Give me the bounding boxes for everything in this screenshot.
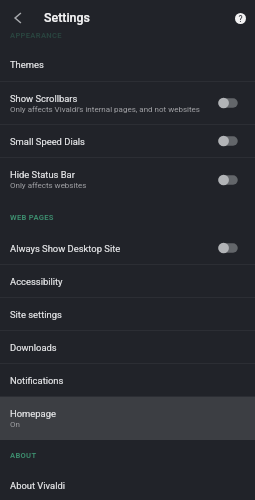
button[interactable]: Notifications [0, 364, 255, 396]
staticText: Settings [44, 10, 90, 25]
staticText: Downloads [10, 342, 57, 353]
staticText: ABOUT [10, 451, 37, 460]
staticText: Small Speed Dials [10, 136, 85, 147]
staticText: About Vivaldi [10, 480, 66, 491]
button[interactable]: Homepage [0, 397, 255, 440]
button[interactable]: About Vivaldi [0, 471, 255, 500]
staticText: APPEARANCE [10, 31, 62, 40]
staticText: Themes [10, 59, 44, 70]
staticText: Always Show Desktop Site [10, 243, 121, 254]
staticText: Hide Status Bar [10, 169, 75, 180]
staticText: Only affects Vivaldi's internal pages, a… [10, 105, 200, 114]
button[interactable]: Back [0, 0, 35, 35]
staticText: Accessibility [10, 276, 63, 287]
staticText: Only affects websites [10, 181, 87, 190]
staticText: Homepage [10, 408, 56, 419]
button[interactable]: Themes [0, 48, 255, 81]
button[interactable]: Downloads [0, 331, 255, 363]
button[interactable]: Small Speed Dials [0, 125, 255, 157]
staticText: Notifications [10, 375, 64, 386]
button[interactable]: Site settings [0, 298, 255, 330]
button[interactable]: Help [225, 3, 255, 33]
button[interactable]: Hide Status Bar [0, 158, 255, 201]
button[interactable]: Show Scrollbars [0, 82, 255, 124]
staticText: ? [238, 14, 243, 24]
staticText: Show Scrollbars [10, 93, 78, 104]
staticText: Site settings [10, 309, 62, 320]
staticText: WEB PAGES [10, 213, 54, 222]
button[interactable]: Accessibility [0, 265, 255, 297]
staticText: On [10, 420, 20, 429]
button[interactable]: Always Show Desktop Site [0, 232, 255, 264]
